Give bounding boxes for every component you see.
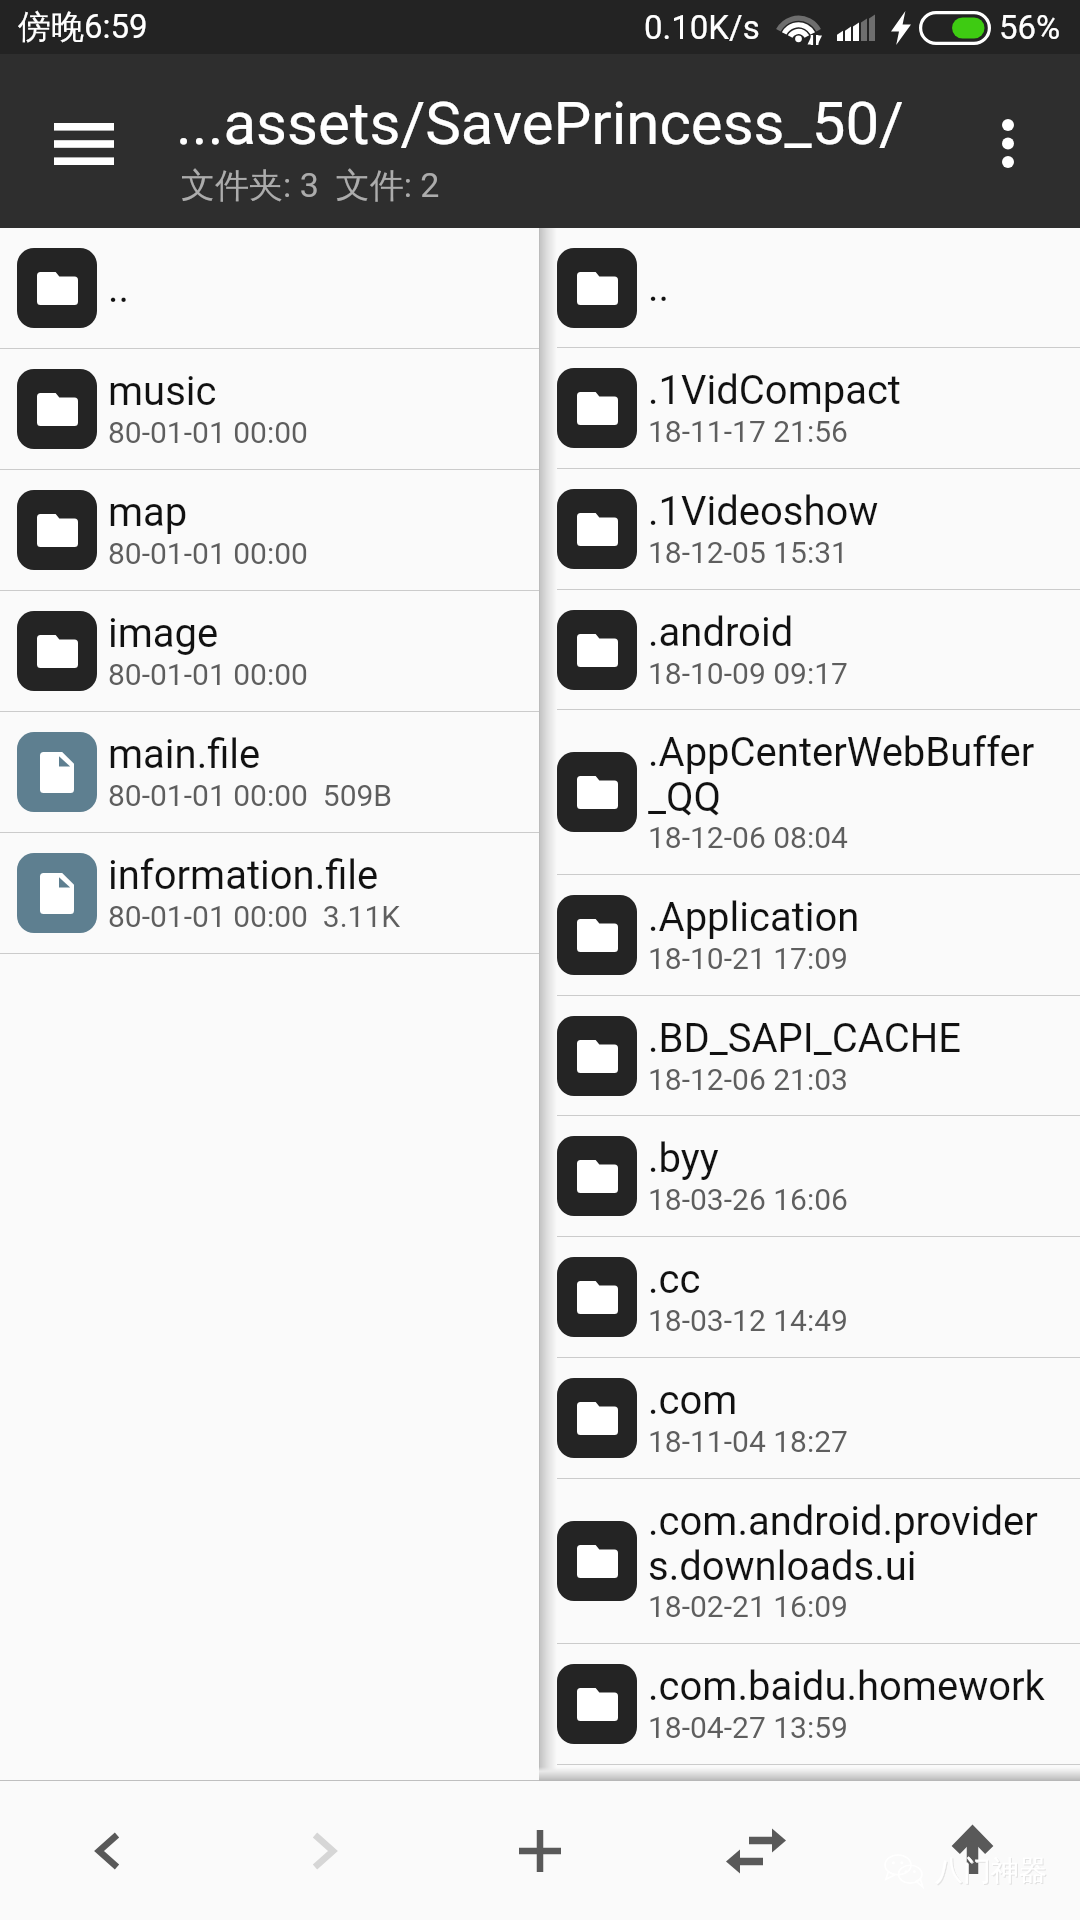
staticText: 18-04-27 13:59 <box>648 1710 848 1745</box>
staticText: 80-01-01 00:00 <box>108 415 308 450</box>
staticText: 18-12-05 15:31 <box>648 535 848 570</box>
staticText: 18-03-26 16:06 <box>648 1182 848 1217</box>
staticText: 八门神器 <box>935 1853 1047 1888</box>
staticText: .1VidCompact <box>648 367 901 414</box>
button[interactable]: map <box>0 470 539 591</box>
staticText: 80-01-01 00:00 509B <box>108 778 393 813</box>
button[interactable]: Back <box>0 1781 216 1920</box>
button[interactable]: .BD_SAPI_CACHE <box>557 996 1080 1116</box>
button[interactable]: .com.baidu.homework <box>557 1644 1080 1765</box>
button[interactable]: Swap panes <box>648 1781 864 1920</box>
staticText: 80-01-01 00:00 3.11K <box>108 899 401 934</box>
staticText: 18-10-09 09:17 <box>648 656 848 691</box>
staticText: 18-02-21 16:09 <box>648 1589 848 1624</box>
staticText: .AppCenterWebBuffer _QQ <box>648 729 1035 820</box>
staticText: .BD_SAPI_CACHE <box>648 1015 961 1062</box>
staticText: 18-03-12 14:49 <box>648 1303 848 1338</box>
staticText: image <box>108 610 219 657</box>
button[interactable]: .AppCenterWebBuffer _QQ <box>557 710 1080 875</box>
staticText: information.file <box>108 852 379 899</box>
button[interactable]: main.file <box>0 712 539 833</box>
staticText: 18-12-06 08:04 <box>648 820 848 855</box>
staticText: 80-01-01 00:00 <box>108 536 308 571</box>
staticText: 56% <box>999 8 1061 47</box>
staticText: music <box>108 368 217 415</box>
button[interactable]: Up one level <box>864 1781 1080 1920</box>
button[interactable]: .cc <box>557 1237 1080 1358</box>
button[interactable]: New folder <box>432 1781 648 1920</box>
staticText: 文件夹: 3 文件: 2 <box>181 164 440 207</box>
staticText: 八门神器 <box>936 1854 1048 1889</box>
button[interactable]: .com.android.provider s.downloads.ui <box>557 1479 1080 1644</box>
staticText: .cc <box>648 1256 701 1303</box>
button[interactable]: .. <box>0 228 539 349</box>
staticText: .android <box>648 609 794 656</box>
staticText: .com.android.provider s.downloads.ui <box>648 1498 1038 1589</box>
button[interactable]: information.file <box>0 833 539 954</box>
button[interactable]: image <box>0 591 539 712</box>
button[interactable]: Menu <box>20 80 148 208</box>
staticText: map <box>108 489 188 536</box>
staticText: 18-11-04 18:27 <box>648 1424 848 1459</box>
staticText: .. <box>108 265 130 312</box>
button[interactable]: music <box>0 349 539 470</box>
staticText: .. <box>648 264 670 311</box>
staticText: 18-11-17 21:56 <box>648 414 848 449</box>
button[interactable]: .byy <box>557 1116 1080 1237</box>
staticText: 18-10-21 17:09 <box>648 941 848 976</box>
staticText: .com.baidu.homework <box>648 1663 1045 1710</box>
staticText: .byy <box>648 1135 719 1182</box>
button[interactable]: Forward <box>216 1781 432 1920</box>
staticText: 0.10K/s <box>644 8 760 47</box>
button[interactable]: .Application <box>557 875 1080 996</box>
staticText: 傍晚6:59 <box>18 6 148 48</box>
button[interactable]: .1VidCompact <box>557 348 1080 469</box>
button[interactable]: .android <box>557 590 1080 710</box>
staticText: 18-12-06 21:03 <box>648 1062 848 1097</box>
staticText: .Application <box>648 894 860 941</box>
button[interactable]: .com <box>557 1358 1080 1479</box>
staticText: ...assets/SavePrincess_50/ <box>176 88 904 158</box>
staticText: 80-01-01 00:00 <box>108 657 308 692</box>
staticText: .1Videoshow <box>648 488 879 535</box>
staticText: .com <box>648 1377 738 1424</box>
staticText: main.file <box>108 731 261 778</box>
button[interactable]: More options <box>944 79 1072 207</box>
button[interactable]: .. <box>557 228 1080 348</box>
button[interactable]: .1Videoshow <box>557 469 1080 590</box>
